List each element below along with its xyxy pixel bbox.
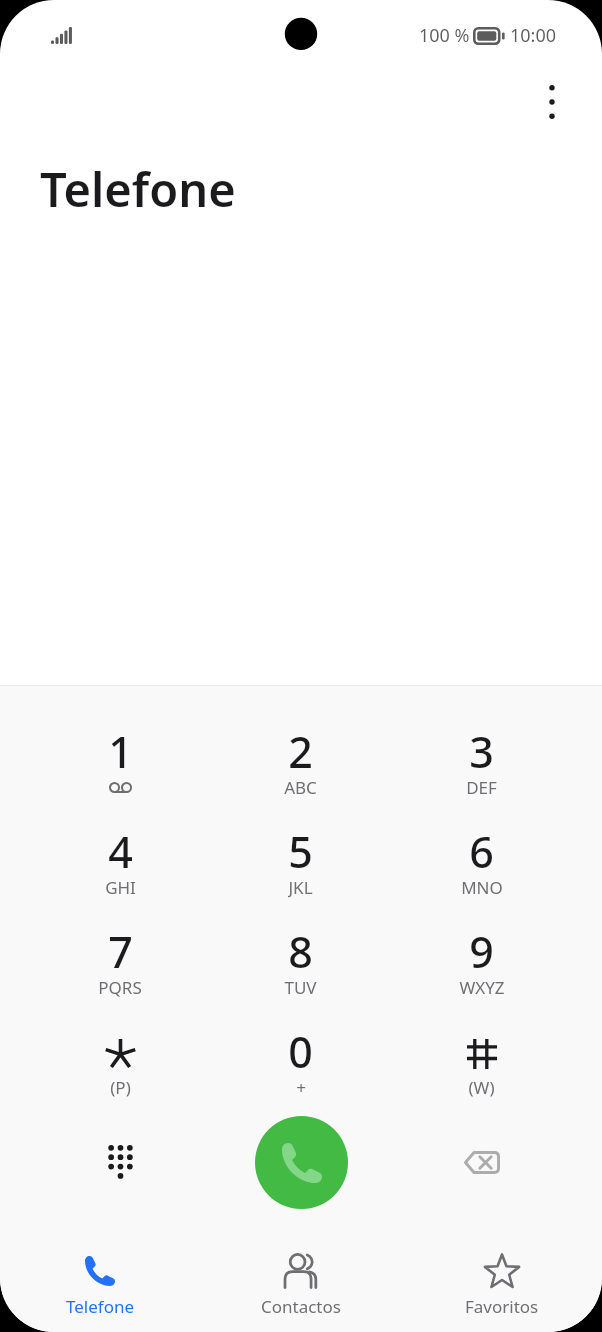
staticText: JKL	[288, 876, 313, 898]
button[interactable]: 6	[391, 833, 572, 933]
button[interactable]: 2	[210, 733, 391, 833]
staticText: 6	[469, 822, 494, 881]
staticText: +	[296, 1076, 306, 1098]
button[interactable]: 8	[210, 933, 391, 1033]
button[interactable]: Apagar	[391, 1112, 572, 1212]
staticText: 100 %	[419, 23, 470, 48]
staticText: 0	[288, 1022, 313, 1081]
staticText: TUV	[284, 976, 317, 998]
staticText: (P)	[110, 1076, 131, 1098]
staticText: 10:00	[510, 23, 557, 48]
button[interactable]: Teclado	[30, 1112, 210, 1212]
staticText: 4	[108, 822, 133, 881]
staticText: Telefone	[40, 157, 236, 221]
button[interactable]: 7	[30, 933, 210, 1033]
staticText: (W)	[468, 1076, 495, 1098]
staticText: 2	[288, 722, 313, 781]
staticText: 3	[469, 722, 494, 781]
staticText: PQRS	[98, 976, 142, 998]
staticText: 7	[108, 922, 133, 981]
button[interactable]: Ligar	[255, 1116, 348, 1209]
button[interactable]: Contactos	[200, 1240, 401, 1332]
button[interactable]: 0	[210, 1033, 391, 1133]
button[interactable]: asterisco	[30, 1033, 210, 1133]
staticText: 1	[108, 722, 133, 781]
button[interactable]: 9	[391, 933, 572, 1033]
staticText: Contactos	[261, 1295, 341, 1318]
staticText: Favoritos	[465, 1295, 539, 1318]
button[interactable]: 5	[210, 833, 391, 933]
button[interactable]: cardinal	[391, 1033, 572, 1133]
staticText: 8	[288, 922, 313, 981]
button[interactable]: 1	[30, 733, 210, 833]
staticText: 5	[288, 822, 313, 881]
button[interactable]: 3	[391, 733, 572, 833]
staticText: DEF	[466, 776, 497, 798]
staticText: MNO	[461, 876, 503, 898]
staticText: GHI	[105, 876, 136, 898]
staticText: WXYZ	[459, 976, 505, 998]
staticText: ABC	[284, 776, 317, 798]
button[interactable]: Favoritos	[401, 1240, 602, 1332]
staticText: Telefone	[66, 1295, 135, 1318]
button[interactable]: Telefone	[0, 1240, 200, 1332]
button[interactable]: 4	[30, 833, 210, 933]
button[interactable]: Mais opções	[528, 78, 576, 126]
staticText: 9	[469, 922, 494, 981]
